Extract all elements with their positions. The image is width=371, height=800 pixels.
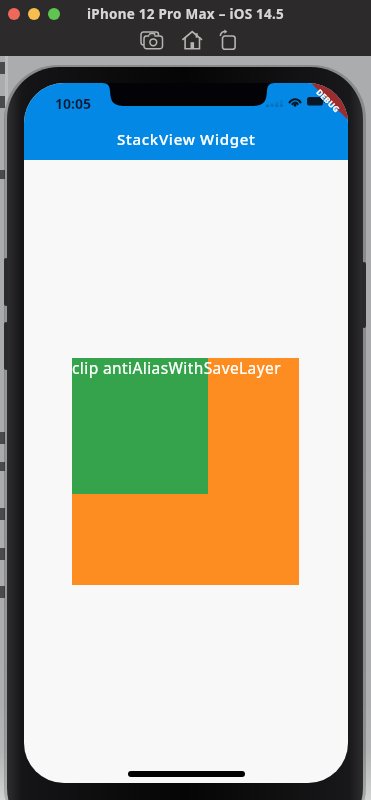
staticText: iPhone 12 Pro Max – iOS 14.5 (87, 5, 285, 23)
button[interactable] (48, 8, 60, 20)
button[interactable]: Home (181, 30, 205, 54)
staticText: DEBUG (314, 86, 343, 115)
button[interactable] (28, 8, 40, 20)
button[interactable] (8, 8, 20, 20)
staticText: 10:05 (55, 94, 91, 113)
button[interactable]: Rotate (217, 29, 239, 53)
staticText: clip antiAliasWithSaveLayer (72, 357, 281, 378)
staticText: StackView Widget (117, 129, 256, 149)
button[interactable]: Screenshot (136, 30, 168, 54)
